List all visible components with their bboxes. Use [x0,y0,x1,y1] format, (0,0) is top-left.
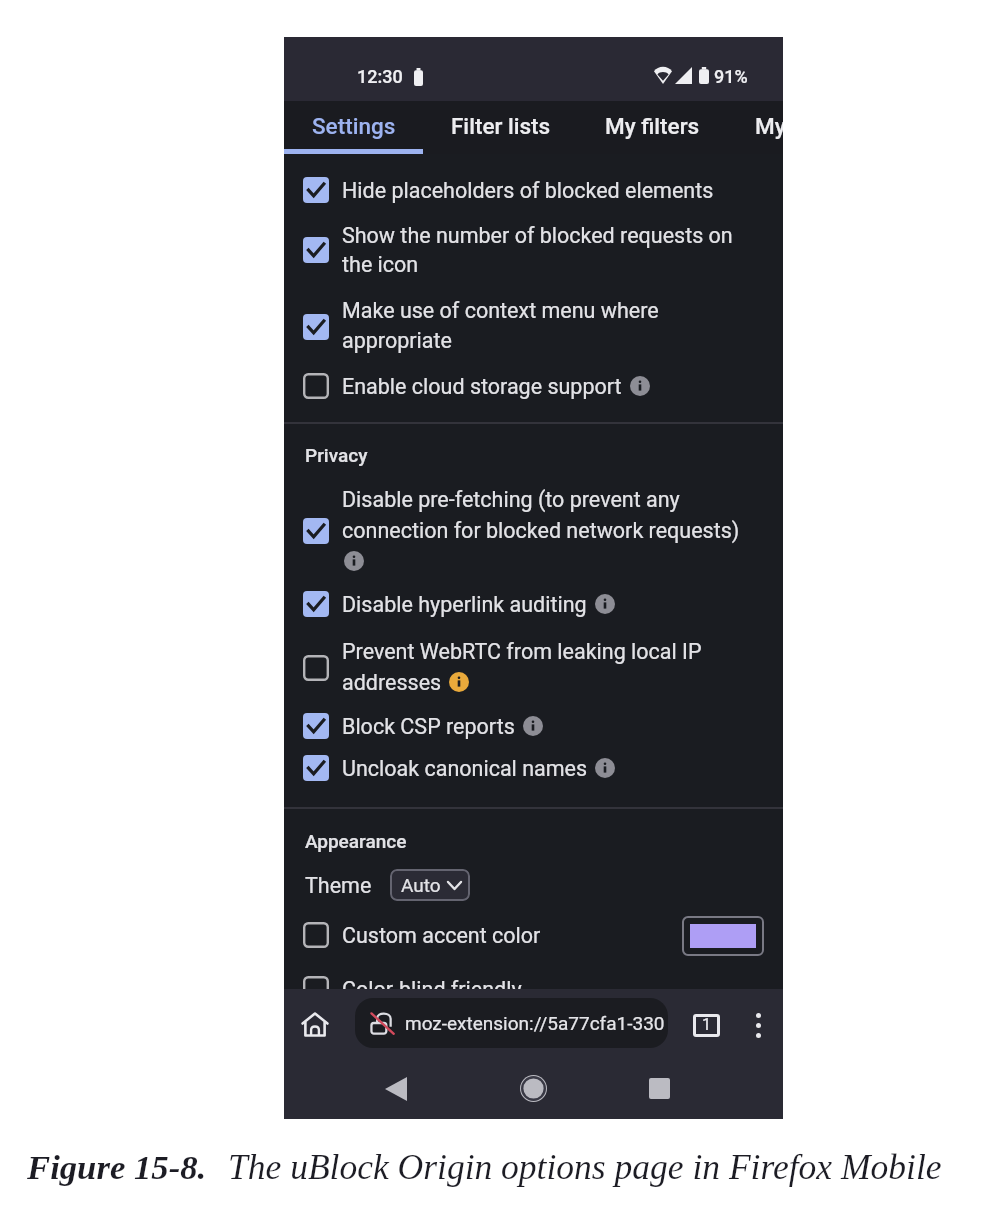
button[interactable]: Tabs [685,1004,727,1046]
staticText: Prevent WebRTC from leaking local IP [342,639,702,664]
staticText: My filters [755,113,783,139]
button[interactable]: Checked [303,591,329,617]
staticText: 12:30 [357,66,403,87]
staticText: Uncloak canonical names [342,756,588,781]
staticText: appropriate [342,328,452,353]
button[interactable]: Settings [284,101,423,154]
button[interactable]: Unchecked [303,922,329,948]
button[interactable]: Back [374,1067,417,1110]
staticText: Theme [305,873,372,898]
button[interactable]: Checked [303,755,329,781]
button[interactable]: Home [293,1002,337,1046]
button[interactable]: More options [743,1010,773,1040]
staticText: Block CSP reports [342,714,515,739]
button[interactable]: Checked [303,518,329,544]
staticText: Privacy [305,444,368,466]
button[interactable]: My filters [579,101,726,154]
staticText: Disable hyperlink auditing [342,592,587,617]
staticText: Disable pre-fetching (to prevent any [342,487,680,512]
button[interactable]: My filters [726,101,783,154]
button[interactable]: Unchecked [303,373,329,399]
staticText: Make use of context menu where [342,298,659,323]
staticText: addresses [342,670,442,695]
button[interactable]: Home [512,1067,555,1110]
staticText: Custom accent color [342,923,541,948]
staticText: connection for blocked network requests) [342,518,740,543]
button[interactable]: Filter lists [423,101,579,154]
button[interactable]: Checked [303,177,329,203]
staticText: Filter lists [451,113,551,139]
staticText: Appearance [305,830,407,852]
staticText: Settings [312,113,396,139]
button[interactable]: Unchecked [303,976,329,1002]
button[interactable]: Checked [303,314,329,340]
button[interactable]: moz-extension://5a77cfa1-330 [355,998,668,1048]
button[interactable]: Unchecked [303,655,329,681]
staticText: Hide placeholders of blocked elements [342,178,714,203]
staticText: My filters [605,113,700,139]
button[interactable]: Recents [638,1067,681,1110]
staticText: Figure 15-8. [27,1148,207,1186]
staticText: Auto [401,874,441,896]
staticText: The uBlock Origin options page in Firefo… [228,1147,942,1186]
button[interactable]: Checked [303,713,329,739]
staticText: 91% [714,66,748,87]
staticText: Enable cloud storage support [342,374,622,399]
staticText: moz-extension://5a77cfa1-330 [405,1012,664,1034]
button[interactable]: Checked [303,237,329,263]
button[interactable]: Auto [390,869,470,901]
staticText: 1 [702,1015,711,1034]
staticText: Color-blind friendly [342,977,522,1002]
staticText: the icon [342,252,419,277]
staticText: Show the number of blocked requests on [342,223,733,248]
